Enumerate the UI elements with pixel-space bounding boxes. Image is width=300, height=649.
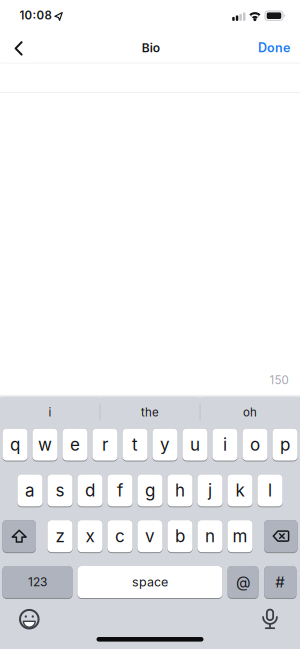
button[interactable]: r — [92, 428, 118, 461]
button[interactable]: b — [167, 520, 193, 553]
staticText: space — [132, 574, 168, 589]
staticText: m — [232, 526, 247, 546]
staticText: b — [175, 526, 185, 546]
staticText: d — [85, 480, 95, 501]
button[interactable]: t — [122, 428, 148, 461]
staticText: k — [235, 480, 244, 501]
staticText: a — [25, 480, 35, 501]
staticText: o — [250, 434, 260, 455]
staticText: e — [70, 434, 80, 455]
button[interactable]: @ — [228, 566, 258, 599]
button[interactable]: u — [182, 428, 208, 461]
staticText: i — [48, 405, 51, 419]
staticText: c — [115, 526, 125, 546]
staticText: q — [10, 434, 20, 455]
staticText: f — [117, 480, 123, 501]
staticText: z — [55, 526, 64, 546]
staticText: # — [275, 573, 285, 591]
button[interactable]: 123 — [2, 566, 72, 599]
button[interactable] — [264, 520, 298, 553]
button[interactable] — [4, 34, 32, 62]
staticText: h — [175, 480, 185, 501]
button[interactable]: # — [264, 566, 296, 599]
button[interactable] — [256, 604, 284, 634]
button[interactable]: y — [152, 428, 178, 461]
button[interactable]: i — [212, 428, 238, 461]
staticText: n — [205, 526, 215, 546]
button[interactable]: z — [47, 520, 73, 553]
button[interactable]: g — [137, 474, 163, 507]
button[interactable]: space — [77, 566, 222, 599]
button[interactable]: s — [47, 474, 73, 507]
staticText: 10:08 — [19, 8, 51, 22]
button[interactable]: n — [197, 520, 223, 553]
staticText: 150 — [269, 373, 288, 387]
button[interactable]: q — [2, 428, 28, 461]
button[interactable]: j — [197, 474, 223, 507]
staticText: s — [55, 480, 64, 501]
button[interactable] — [2, 520, 36, 553]
button[interactable]: p — [272, 428, 298, 461]
button[interactable] — [16, 606, 42, 632]
staticText: 123 — [28, 575, 47, 589]
button[interactable]: c — [107, 520, 133, 553]
staticText: v — [145, 526, 155, 546]
button[interactable]: d — [77, 474, 103, 507]
button[interactable]: o — [242, 428, 268, 461]
staticText: oh — [243, 405, 257, 419]
button[interactable]: m — [227, 520, 253, 553]
button[interactable]: w — [32, 428, 58, 461]
staticText: Done — [258, 40, 290, 55]
button[interactable]: l — [257, 474, 283, 507]
staticText: u — [190, 434, 200, 455]
button[interactable]: k — [227, 474, 253, 507]
staticText: y — [160, 434, 170, 455]
staticText: p — [280, 434, 290, 455]
staticText: x — [85, 526, 94, 546]
button[interactable]: the — [103, 397, 197, 427]
staticText: i — [223, 434, 227, 455]
button[interactable]: x — [77, 520, 103, 553]
button[interactable]: f — [107, 474, 133, 507]
button[interactable]: a — [17, 474, 43, 507]
staticText: t — [132, 434, 138, 455]
button[interactable]: e — [62, 428, 88, 461]
staticText: l — [268, 480, 272, 501]
staticText: g — [145, 480, 155, 501]
button[interactable]: i — [3, 397, 97, 427]
button[interactable]: Done — [242, 34, 300, 62]
button[interactable]: h — [167, 474, 193, 507]
staticText: the — [141, 405, 159, 419]
staticText: @ — [236, 573, 250, 591]
button[interactable]: v — [137, 520, 163, 553]
button[interactable]: oh — [203, 397, 297, 427]
staticText: w — [38, 434, 52, 455]
staticText: Bio — [142, 41, 160, 55]
staticText: j — [208, 480, 212, 501]
staticText: r — [102, 434, 108, 455]
